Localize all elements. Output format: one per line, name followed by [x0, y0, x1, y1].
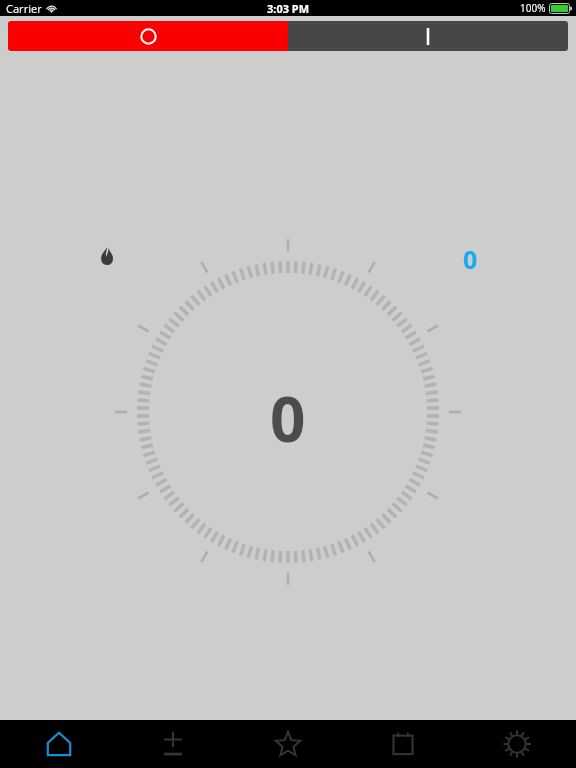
staticText: 3:03 PM	[267, 1, 310, 16]
staticText: 0	[270, 376, 306, 460]
other: Record	[140, 28, 157, 45]
button[interactable]: Calendar	[347, 720, 459, 768]
button[interactable]: 0	[0, 56, 576, 720]
button[interactable]: Settings	[461, 720, 573, 768]
staticText: 0	[463, 242, 478, 276]
staticText: 100%	[520, 1, 546, 15]
button[interactable]: Record	[8, 21, 288, 51]
button[interactable]: Pause	[288, 21, 568, 51]
button[interactable]: Favourites	[232, 720, 344, 768]
staticText: Carrier	[6, 1, 42, 16]
other: Calories burned	[100, 247, 114, 265]
other: Pause	[425, 28, 431, 45]
button[interactable]: Add or remove	[117, 720, 229, 768]
button[interactable]: Home	[3, 720, 115, 768]
